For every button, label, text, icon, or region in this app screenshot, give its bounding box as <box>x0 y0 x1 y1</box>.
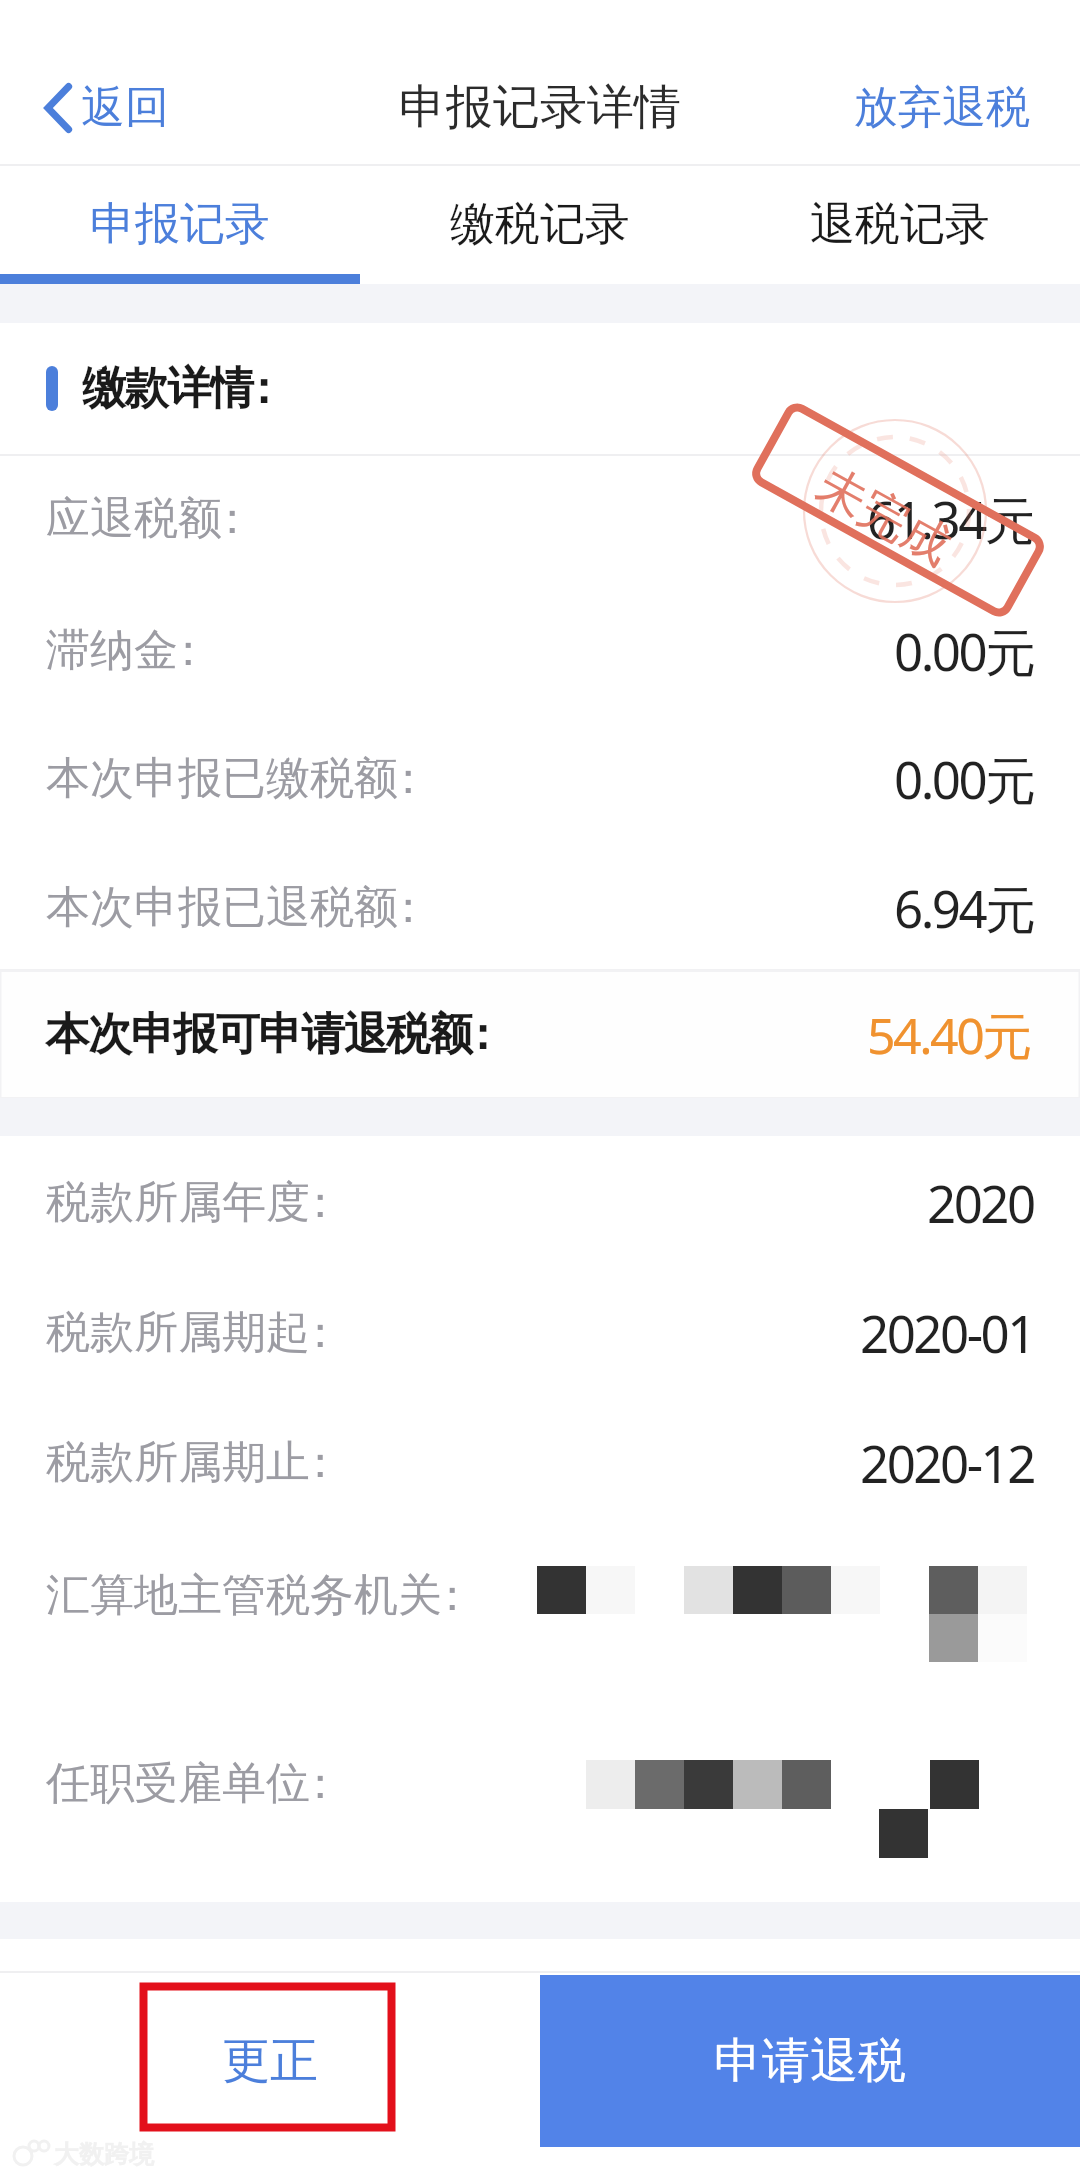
staticText: 2020-12 <box>860 1428 1034 1497</box>
staticText: ： <box>298 1756 342 1811</box>
button[interactable]: 缴税记录 <box>360 166 720 284</box>
staticText: 申请退税 <box>714 2031 906 2091</box>
staticText: ： <box>430 1568 474 1623</box>
staticText: ： <box>298 1305 342 1360</box>
staticText: 申报记录详情 <box>399 78 681 137</box>
staticText: 滞纳金 <box>46 623 178 678</box>
staticText: 税款所属期止 <box>46 1435 310 1490</box>
staticText: 0.00元 <box>894 616 1034 686</box>
staticText: 汇算地主管税务机关 <box>46 1568 442 1623</box>
staticText: 缴款详情 <box>82 361 253 416</box>
staticText: ： <box>386 880 430 935</box>
staticText: 61.34元 <box>867 484 1034 554</box>
staticText: 本次申报已缴税额 <box>46 751 398 806</box>
staticText: 0.00元 <box>894 744 1034 814</box>
staticText: ： <box>210 491 254 546</box>
button[interactable]: 退税记录 <box>720 166 1080 284</box>
staticText: 申报记录 <box>90 196 270 253</box>
button[interactable]: 申请退税 <box>540 1975 1080 2147</box>
staticText: 税款所属期起 <box>46 1305 310 1360</box>
staticText: ： <box>298 1435 342 1490</box>
staticText: ： <box>298 1175 342 1230</box>
staticText: 更正 <box>222 2031 318 2091</box>
staticText: 2020-01 <box>860 1298 1034 1367</box>
staticText: 缴税记录 <box>450 196 630 253</box>
button[interactable]: 放弃退税 <box>824 66 1080 149</box>
staticText: 退税记录 <box>810 196 990 253</box>
staticText: 未完成 <box>807 455 962 577</box>
button[interactable]: 申报记录 <box>0 166 360 284</box>
staticText: 应退税额 <box>46 491 222 546</box>
staticText: 54.40元 <box>867 1001 1030 1069</box>
staticText: 返回 <box>81 80 169 135</box>
staticText: 2020 <box>927 1168 1034 1237</box>
staticText: 本次申报已退税额 <box>46 880 398 935</box>
button[interactable]: Back <box>0 66 199 149</box>
button[interactable]: 本次申报可申请退税额 <box>0 971 1080 1098</box>
staticText: 本次申报可申请退税额 <box>46 1007 472 1062</box>
staticText: ： <box>241 361 284 416</box>
staticText: 6.94元 <box>894 873 1034 943</box>
button[interactable]: 更正 <box>0 1975 540 2147</box>
staticText: ： <box>166 623 210 678</box>
staticText: 税款所属年度 <box>46 1175 310 1230</box>
other: Back <box>44 83 72 133</box>
staticText: 放弃退税 <box>854 80 1030 135</box>
staticText: ： <box>386 751 430 806</box>
staticText: 任职受雇单位 <box>46 1756 310 1811</box>
staticText: 大数跨境 <box>54 2139 154 2170</box>
staticText: ： <box>460 1007 503 1062</box>
